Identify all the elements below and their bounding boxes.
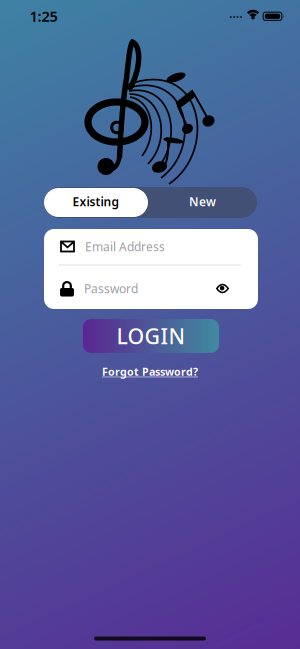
button[interactable]: Forgot Password?	[102, 364, 198, 379]
button[interactable]: Show Password	[210, 276, 234, 300]
staticText: Existing	[72, 193, 119, 209]
staticText: Email Address	[85, 238, 165, 254]
staticText: 1:25	[29, 6, 57, 26]
button[interactable]: Password	[60, 270, 210, 306]
button[interactable]: LOGIN	[83, 319, 219, 353]
staticText: LOGIN	[116, 322, 185, 350]
staticText: Forgot Password?	[102, 364, 198, 379]
staticText: Password	[84, 280, 138, 296]
button[interactable]: New	[150, 188, 254, 217]
button[interactable]: Email Address	[60, 230, 242, 262]
staticText: New	[189, 193, 216, 209]
button[interactable]: Existing	[44, 188, 148, 217]
